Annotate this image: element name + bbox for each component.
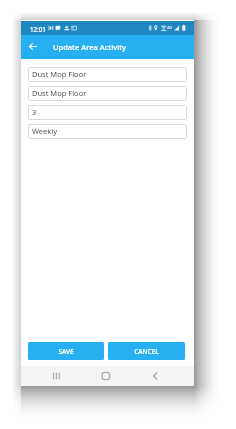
staticText: 3 — [32, 107, 37, 117]
button[interactable]: Home — [78, 366, 136, 386]
button[interactable]: Recents — [21, 366, 78, 386]
button[interactable]: Weekly — [28, 124, 187, 139]
button[interactable]: Back — [21, 35, 45, 59]
staticText: 12:01 — [30, 25, 46, 33]
button[interactable]: Dust Mop Floor — [28, 67, 187, 82]
button[interactable]: CANCEL — [108, 342, 185, 360]
staticText: 4G — [167, 25, 173, 30]
staticText: Weekly — [32, 126, 58, 136]
staticText: SAVE — [58, 347, 74, 356]
staticText: Dust Mop Floor — [32, 69, 87, 79]
button[interactable]: SAVE — [28, 342, 104, 360]
button[interactable]: 3 — [28, 105, 187, 120]
staticText: Dust Mop Floor — [32, 88, 87, 98]
button[interactable]: Dust Mop Floor — [28, 86, 187, 101]
staticText: CANCEL — [134, 347, 159, 356]
button[interactable]: Back — [136, 366, 194, 386]
staticText: Update Area Activity — [53, 42, 127, 52]
